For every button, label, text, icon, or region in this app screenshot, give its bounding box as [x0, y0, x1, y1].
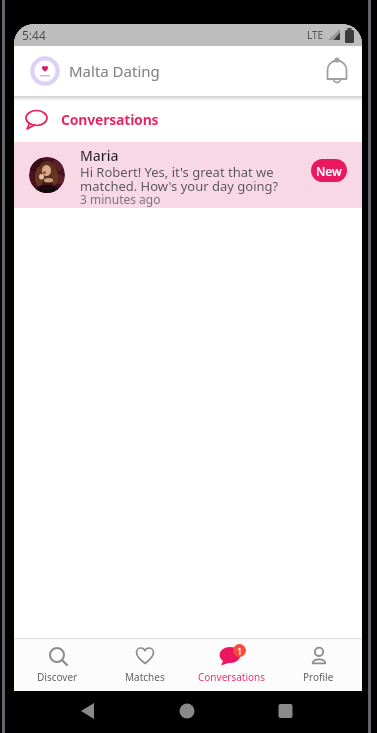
staticText: Discover: [37, 670, 78, 684]
staticText: LTE: [307, 28, 324, 42]
staticText: New: [316, 163, 342, 179]
staticText: 1: [237, 645, 243, 657]
staticText: Matches: [125, 670, 165, 684]
staticText: Malta Dating: [69, 61, 160, 81]
staticText: 3 minutes ago: [80, 191, 161, 207]
staticText: Conversations: [61, 110, 159, 129]
staticText: Conversations: [198, 670, 266, 684]
staticText: Profile: [303, 670, 334, 684]
staticText: 5:44: [22, 27, 46, 43]
staticText: matched. How's your day going?: [80, 177, 279, 195]
staticText: Hi Robert! Yes, it's great that we: [80, 163, 274, 181]
staticText: Maria: [80, 146, 119, 165]
